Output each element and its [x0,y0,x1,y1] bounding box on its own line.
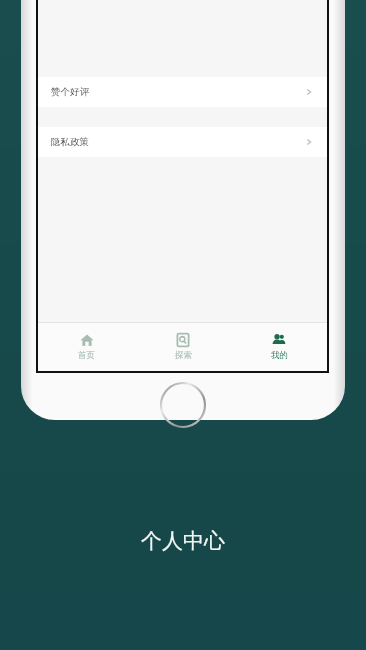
staticText: 探索 [175,350,192,361]
staticText: 首页 [78,350,95,361]
staticText: 我的 [271,350,288,361]
staticText: 个人中心 [141,528,225,554]
button[interactable]: 首页 [38,323,135,371]
other: Home button [160,382,206,428]
button[interactable]: 赞个好评 [38,77,327,107]
button[interactable]: 隐私政策 [38,127,327,157]
button[interactable]: 我的 [231,323,327,371]
staticText: 赞个好评 [51,86,89,98]
staticText: 隐私政策 [51,136,89,148]
button[interactable]: 探索 [135,323,231,371]
